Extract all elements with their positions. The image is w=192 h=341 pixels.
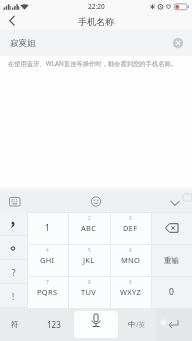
staticText: 重输	[164, 256, 179, 265]
staticText: 6	[129, 247, 132, 253]
staticText: 1	[45, 222, 50, 234]
staticText: 5	[88, 247, 91, 253]
staticText: 4	[46, 247, 49, 253]
staticText: 123	[47, 319, 61, 330]
staticText: MNO	[121, 255, 141, 265]
staticText: /英	[136, 320, 145, 329]
button[interactable]: WXYZ	[110, 276, 151, 308]
staticText: ?	[12, 267, 16, 278]
staticText: 3	[129, 215, 132, 221]
staticText: 9	[129, 279, 132, 285]
staticText: 7	[46, 279, 49, 285]
staticText: 22:20	[88, 2, 105, 11]
button[interactable]: 1	[27, 212, 68, 244]
staticText: 0	[169, 286, 174, 298]
button[interactable]	[0, 236, 27, 260]
staticText: 中	[128, 320, 136, 329]
staticText: JKL	[83, 255, 95, 265]
button[interactable]: JKL	[68, 244, 110, 276]
staticText: PQRS	[37, 287, 58, 297]
button[interactable]: 123	[33, 308, 74, 341]
button[interactable]: DEF	[110, 212, 151, 244]
button[interactable]: ABC	[68, 212, 110, 244]
staticText: !	[12, 291, 15, 302]
staticText: 符	[11, 320, 19, 329]
button[interactable]	[74, 311, 118, 338]
button[interactable]: !	[0, 284, 27, 308]
button[interactable]	[0, 212, 27, 236]
button[interactable]: 0	[151, 276, 192, 308]
button[interactable]: ?	[0, 260, 27, 284]
button[interactable]	[0, 30, 192, 56]
staticText: GHI	[40, 255, 55, 265]
button[interactable]: PQRS	[27, 276, 68, 308]
button[interactable]: TUV	[68, 276, 110, 308]
button[interactable]: 符	[0, 308, 29, 341]
button[interactable]: 中	[118, 308, 155, 341]
staticText: ABC	[81, 223, 97, 233]
button[interactable]: GHI	[27, 244, 68, 276]
staticText: 8	[88, 279, 91, 285]
staticText: DEF	[123, 223, 138, 233]
staticText: 手机名称	[78, 16, 114, 27]
staticText: 寂寞姐	[10, 38, 36, 49]
staticText: 在使用蓝牙、WLAN直连等操作时，都会看到您的手机名称。	[8, 59, 178, 68]
staticText: WXYZ	[120, 287, 142, 297]
button[interactable]: MNO	[110, 244, 151, 276]
button[interactable]: 重输	[151, 244, 192, 276]
staticText: 2	[88, 215, 91, 221]
staticText: TUV	[81, 287, 97, 297]
